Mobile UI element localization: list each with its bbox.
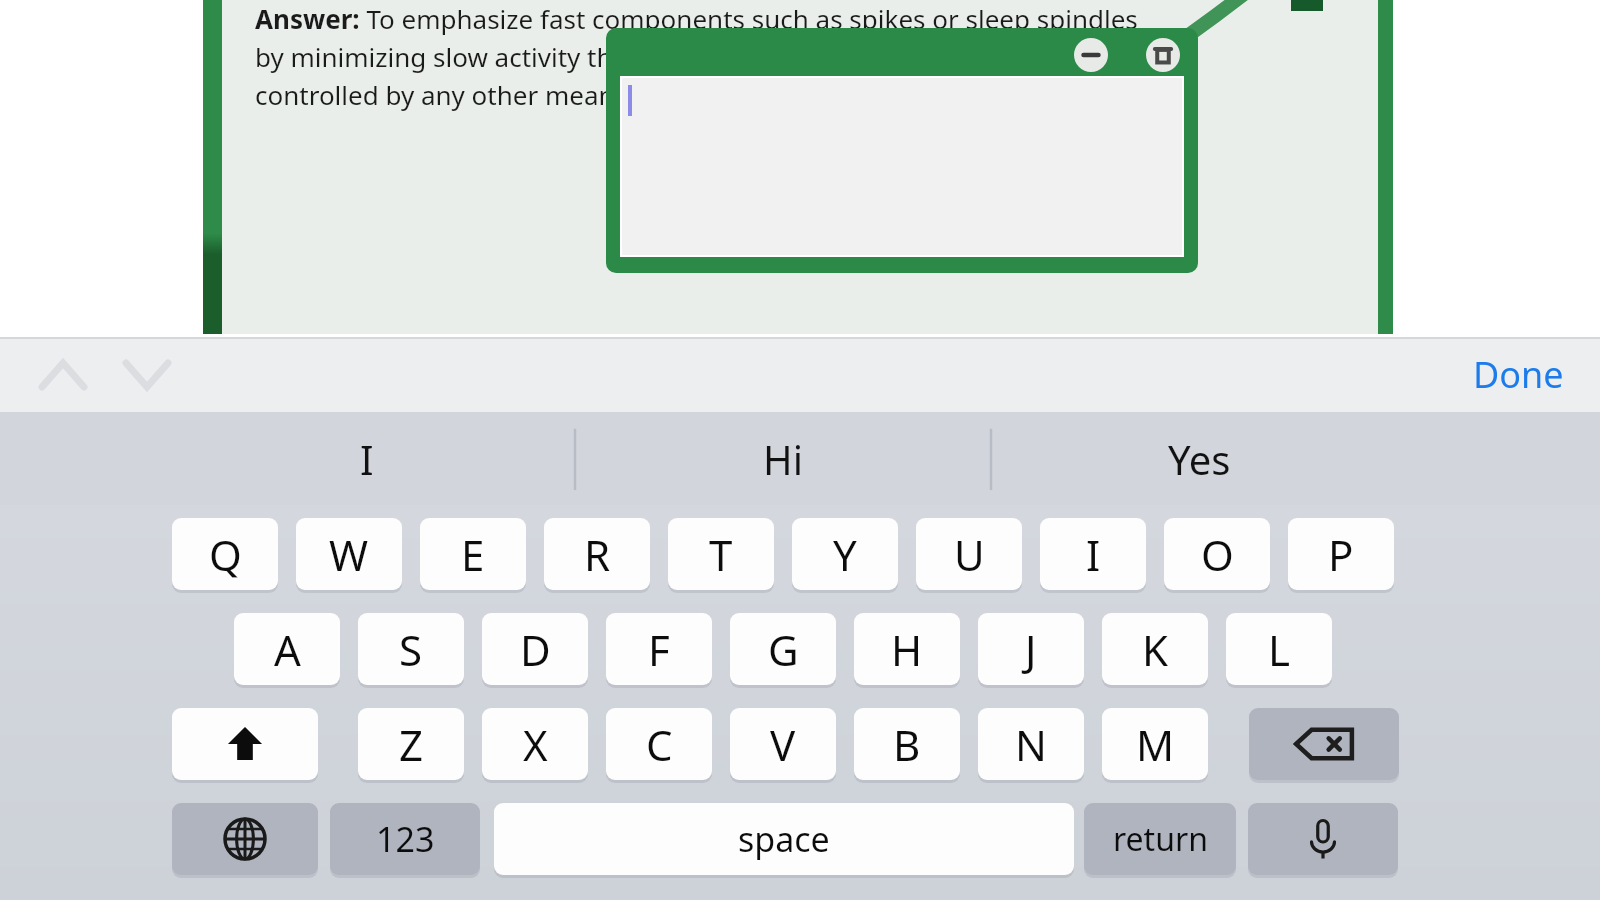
staticText: T: [709, 526, 733, 583]
button[interactable]: return: [1084, 803, 1236, 875]
staticText: H: [891, 621, 923, 678]
button[interactable]: Y: [792, 518, 898, 590]
staticText: controlled by any other means, e.g. elec…: [255, 77, 985, 112]
button[interactable]: L: [1226, 613, 1332, 685]
button[interactable]: D: [482, 613, 588, 685]
button[interactable]: S: [358, 613, 464, 685]
button[interactable]: G: [730, 613, 836, 685]
button[interactable]: Dictate: [1248, 803, 1398, 875]
staticText: I: [1086, 526, 1101, 583]
staticText: M: [1136, 716, 1175, 773]
staticText: N: [1015, 716, 1047, 773]
staticText: D: [520, 621, 551, 678]
staticText: E: [461, 526, 485, 583]
button[interactable]: K: [1102, 613, 1208, 685]
button[interactable]: J: [978, 613, 1084, 685]
button[interactable]: Change keyboard: [172, 803, 318, 875]
staticText: space: [738, 816, 830, 862]
button[interactable]: F: [606, 613, 712, 685]
staticText: S: [399, 621, 423, 678]
staticText: Hi: [763, 432, 803, 486]
button[interactable]: T: [668, 518, 774, 590]
staticText: I: [360, 432, 374, 486]
button[interactable]: Collapse note: [606, 28, 1198, 273]
staticText: Yes: [1168, 432, 1231, 486]
button[interactable]: Shift: [172, 708, 318, 780]
staticText: G: [768, 621, 799, 678]
staticText: A: [274, 621, 301, 678]
staticText: Done: [1473, 350, 1564, 399]
staticText: C: [646, 716, 673, 773]
staticText: K: [1142, 621, 1168, 678]
button[interactable]: A: [234, 613, 340, 685]
staticText: P: [1328, 526, 1354, 583]
button[interactable]: B: [854, 708, 960, 780]
staticText: U: [954, 526, 985, 583]
button[interactable]: Q: [172, 518, 278, 590]
button[interactable]: R: [544, 518, 650, 590]
button[interactable]: Z: [358, 708, 464, 780]
button[interactable]: 123: [330, 803, 480, 875]
button[interactable]: Collapse note: [1074, 38, 1108, 72]
staticText: B: [893, 716, 921, 773]
staticText: W: [329, 526, 369, 583]
button[interactable]: Done: [1459, 344, 1578, 405]
staticText: X: [523, 716, 548, 773]
staticText: Q: [209, 526, 242, 583]
staticText: L: [1268, 621, 1291, 678]
staticText: by minimizing slow activity that may ref…: [255, 39, 1025, 74]
button[interactable]: N: [978, 708, 1084, 780]
staticText: V: [770, 716, 796, 773]
button[interactable]: Backspace: [1249, 708, 1399, 780]
button[interactable]: Next field: [118, 346, 176, 404]
button[interactable]: Previous field: [34, 346, 92, 404]
button[interactable]: P: [1288, 518, 1394, 590]
staticText: return: [1113, 817, 1208, 861]
button[interactable]: I: [237, 412, 497, 505]
button[interactable]: X: [482, 708, 588, 780]
button[interactable]: Delete note: [1146, 38, 1180, 72]
button[interactable]: V: [730, 708, 836, 780]
button[interactable]: Hi: [653, 412, 913, 505]
button[interactable]: Yes: [1069, 412, 1329, 505]
button[interactable]: H: [854, 613, 960, 685]
button[interactable]: C: [606, 708, 712, 780]
staticText: O: [1201, 526, 1234, 583]
button[interactable]: U: [916, 518, 1022, 590]
staticText: Z: [399, 716, 424, 773]
button[interactable]: I: [1040, 518, 1146, 590]
staticText: F: [648, 621, 670, 678]
button[interactable]: E: [420, 518, 526, 590]
button[interactable]: O: [1164, 518, 1270, 590]
staticText: Answer: To emphasize fast components suc…: [255, 1, 1138, 36]
button[interactable]: M: [1102, 708, 1208, 780]
button[interactable]: space: [494, 803, 1074, 875]
button[interactable]: W: [296, 518, 402, 590]
staticText: R: [584, 526, 611, 583]
staticText: Y: [833, 526, 857, 583]
staticText: J: [1025, 621, 1037, 678]
staticText: 123: [376, 816, 435, 862]
